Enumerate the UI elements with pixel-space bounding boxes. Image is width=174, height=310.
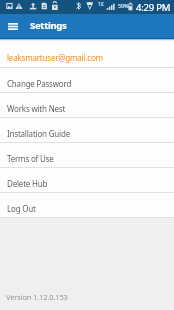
staticText: Works with Nest bbox=[7, 103, 66, 114]
staticText: Version 1.12.0.153 bbox=[6, 292, 68, 302]
staticText: Installation Guide bbox=[7, 128, 70, 139]
button[interactable]: Open navigation menu bbox=[0, 14, 30, 38]
button[interactable]: Installation Guide bbox=[0, 118, 174, 142]
button[interactable]: Terms of Use bbox=[0, 143, 174, 167]
button[interactable]: Delete Hub bbox=[0, 168, 174, 192]
staticText: Delete Hub bbox=[7, 178, 48, 189]
button[interactable]: Works with Nest bbox=[0, 93, 174, 117]
staticText: 59% bbox=[118, 2, 129, 9]
staticText: 1X bbox=[98, 1, 104, 8]
staticText: 4:29 PM bbox=[136, 1, 171, 14]
button[interactable]: leaksmartuser@gmail.com bbox=[0, 41, 174, 67]
staticText: Terms of Use bbox=[7, 153, 54, 164]
staticText: leaksmartuser@gmail.com bbox=[7, 52, 103, 63]
staticText: Log Out bbox=[7, 203, 36, 214]
button[interactable]: Change Password bbox=[0, 68, 174, 92]
staticText: Change Password bbox=[7, 78, 72, 89]
staticText: Settings bbox=[30, 19, 67, 32]
button[interactable]: Log Out bbox=[0, 193, 174, 217]
